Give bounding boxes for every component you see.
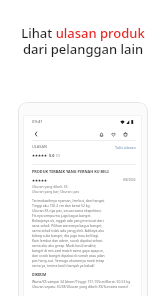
- staticText: sama aku aku gerap. Mudi-hasil terakhir,: [32, 243, 97, 248]
- staticText: (1): [56, 153, 60, 158]
- staticText: sana sekali. Pilihan warnanya bagus bang…: [32, 223, 103, 228]
- staticText: 8/8/2024: [123, 178, 136, 182]
- button[interactable]: Back: [32, 130, 40, 138]
- staticText: pas hang-out. Semoga ukurannya nanti tet…: [32, 258, 105, 263]
- button[interactable]: Cart: [121, 130, 129, 138]
- staticText: Ukuran yang bar, Ukuran: pas: [32, 189, 80, 194]
- staticText: Ukuran sepatu: EU38/Ukuran yang dibeli: …: [32, 284, 128, 289]
- staticText: Tinggi aku 150.2 cm dan berat 52 kg.: [32, 203, 91, 208]
- staticText: Lihat ulasan produk dari pelanggan lain: [21, 24, 145, 57]
- button[interactable]: Notifications: [97, 130, 105, 138]
- staticText: PRODUK TERBAIK YANG PERNAH KU BELI: [32, 169, 109, 174]
- staticText: 09:41: [32, 119, 43, 125]
- staticText: DIKIRIM: [32, 272, 47, 277]
- staticText: bilang suka banget, dia juga mau beli la…: [32, 233, 100, 238]
- staticText: ULASAN: [32, 144, 47, 149]
- staticText: Ukuran yang dibeli: XS: [32, 184, 68, 189]
- staticText: Ukuran XS-nya pas, sesuai sama ekspektas…: [32, 208, 102, 213]
- staticText: Terimakasihnya nyaman, lembut, dan hanga…: [32, 198, 105, 203]
- staticText: 5.0: [49, 153, 55, 158]
- staticText: Warta/XS sampai 34 Idrom/Tinggi: 151-155…: [32, 279, 131, 284]
- staticText: Belanjanya ok, nggak ada yang mencuat da…: [32, 218, 104, 223]
- staticText: Fit-nya sempurna juga bagus banget.: [32, 213, 92, 218]
- staticText: sama ya, terima kasih banyak ya kakak!: [32, 263, 95, 268]
- button[interactable]: Wishlist: [109, 130, 117, 138]
- staticText: dan cocok banget dipakai di rumah atau j…: [32, 253, 105, 258]
- button[interactable]: Tulis ulasan: [115, 145, 136, 150]
- staticText: Tulis ulasan: [115, 145, 136, 150]
- staticText: banget di mis-and match sama gaya apapun…: [32, 248, 104, 253]
- staticText: Kain lembut dan adem, cocok dipakai seha…: [32, 238, 104, 243]
- staticText: sama sekali tidak ada yang jelek. Adikny…: [32, 228, 105, 233]
